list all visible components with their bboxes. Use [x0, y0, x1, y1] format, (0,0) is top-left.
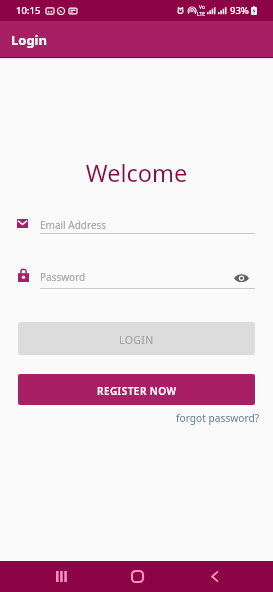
staticText: REGISTER NOW	[97, 384, 177, 398]
staticText: LTE	[197, 11, 206, 18]
button[interactable]: REGISTER NOW	[18, 374, 255, 405]
staticText: Email Address	[40, 218, 107, 232]
staticText: Vo	[199, 4, 205, 11]
button[interactable]: LOGIN	[18, 322, 255, 355]
button[interactable]: forgot password?	[176, 411, 260, 425]
staticText: forgot password?	[176, 411, 260, 425]
staticText: 10:15	[16, 4, 41, 17]
button[interactable]: Home	[113, 561, 161, 592]
staticText: Welcome	[0, 157, 273, 189]
button[interactable]: Recent apps	[37, 561, 85, 592]
staticText: Login	[11, 31, 47, 49]
button[interactable]: Back	[190, 561, 238, 592]
staticText: 93%	[230, 4, 249, 17]
button[interactable]: Show password	[234, 273, 249, 283]
staticText: LOGIN	[119, 333, 154, 347]
staticText: Password	[40, 270, 86, 284]
